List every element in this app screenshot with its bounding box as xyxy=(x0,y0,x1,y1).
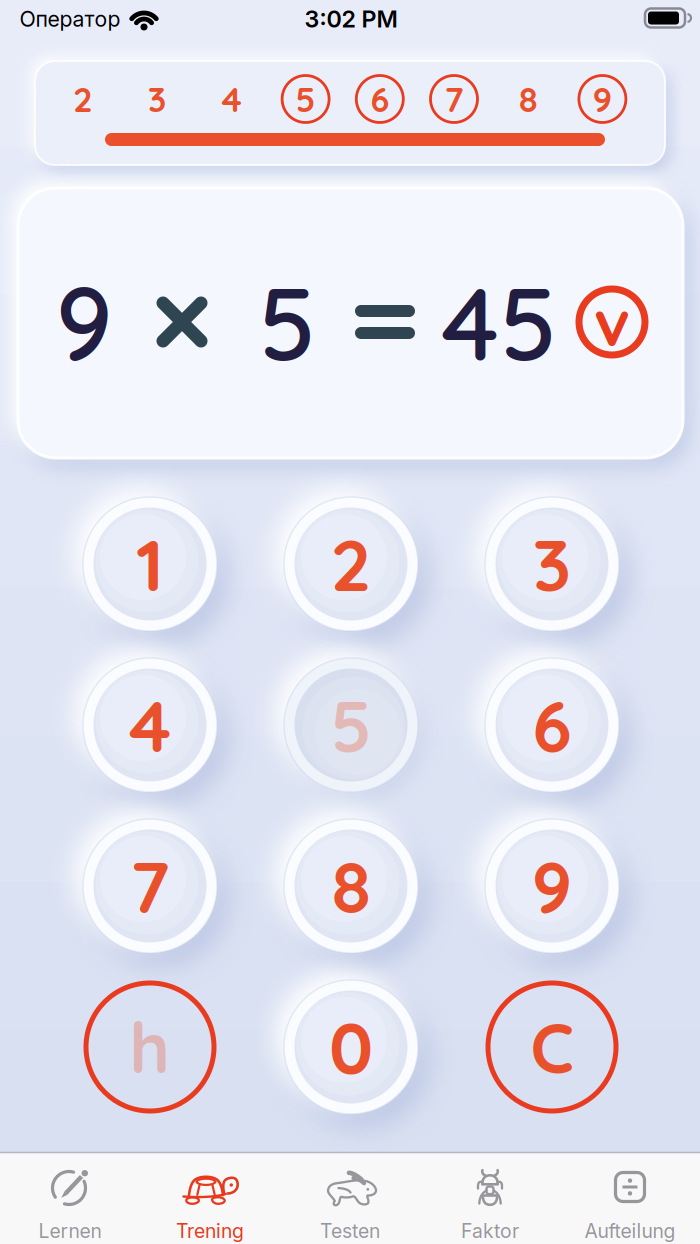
button[interactable]: Aufteilung xyxy=(560,1152,700,1244)
staticText: 8 xyxy=(519,77,538,121)
staticText: Lernen xyxy=(38,1219,101,1243)
staticText: 5 xyxy=(330,680,371,770)
button[interactable]: 7 xyxy=(429,74,479,124)
staticText: h xyxy=(129,1004,170,1090)
staticText: 8 xyxy=(331,841,370,931)
staticText: 9 xyxy=(55,259,112,385)
button[interactable]: 6 xyxy=(355,74,405,124)
staticText: 7 xyxy=(130,841,170,931)
button[interactable]: 9 xyxy=(577,74,627,124)
button[interactable]: 4 xyxy=(206,74,256,124)
button[interactable]: 3 xyxy=(132,74,182,124)
staticText: Aufteilung xyxy=(584,1219,675,1243)
staticText: 0 xyxy=(329,1002,373,1092)
staticText: 2 xyxy=(330,519,371,609)
button[interactable]: Testen xyxy=(280,1152,420,1244)
staticText: 4 xyxy=(129,680,171,770)
button[interactable]: 7 xyxy=(79,815,221,957)
staticText: 1 xyxy=(136,519,164,609)
staticText: 5 xyxy=(258,259,315,385)
button[interactable]: 4 xyxy=(79,654,221,796)
staticText: 6 xyxy=(370,77,389,121)
button[interactable]: v xyxy=(576,286,648,358)
button[interactable]: h xyxy=(79,976,221,1118)
button[interactable]: Trening xyxy=(140,1152,280,1244)
staticText: 9 xyxy=(592,77,612,121)
staticText: 5 xyxy=(296,77,316,121)
button[interactable]: 6 xyxy=(481,654,623,796)
staticText: Оператор xyxy=(19,6,120,32)
staticText: 6 xyxy=(532,680,572,770)
staticText: 3 xyxy=(148,77,167,121)
button[interactable]: 9 xyxy=(481,815,623,957)
staticText: 4 xyxy=(221,77,241,121)
button[interactable]: 3 xyxy=(481,493,623,635)
staticText: 45 xyxy=(441,259,556,385)
staticText: v xyxy=(594,282,630,362)
button[interactable]: 5 xyxy=(281,74,331,124)
button[interactable]: 5 xyxy=(280,654,422,796)
button[interactable]: 2 xyxy=(280,493,422,635)
button[interactable]: 8 xyxy=(503,74,553,124)
button[interactable]: C xyxy=(481,976,623,1118)
staticText: 3:02 PM xyxy=(304,5,397,33)
staticText: 9 xyxy=(531,841,572,931)
staticText: 7 xyxy=(444,77,463,121)
button[interactable]: 8 xyxy=(280,815,422,957)
staticText: Faktor xyxy=(461,1219,519,1243)
staticText: Testen xyxy=(320,1219,380,1243)
button[interactable]: Lernen xyxy=(0,1152,140,1244)
button[interactable]: Faktor xyxy=(420,1152,560,1244)
staticText: 2 xyxy=(73,77,93,121)
staticText: Trening xyxy=(176,1219,244,1243)
staticText: 3 xyxy=(532,519,571,609)
button[interactable]: 1 xyxy=(79,493,221,635)
staticText: C xyxy=(530,1004,573,1090)
button[interactable]: 2 xyxy=(58,74,108,124)
button[interactable]: 0 xyxy=(280,976,422,1118)
